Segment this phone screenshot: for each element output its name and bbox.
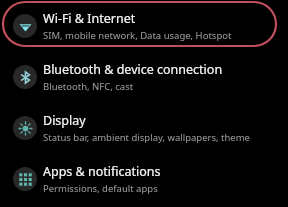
staticText: Permissions, default apps (43, 182, 158, 195)
staticText: Wi-Fi & Internet (43, 10, 136, 27)
button[interactable]: Wi-Fi & Internet (0, 0, 288, 51)
staticText: Bluetooth & device connection (43, 61, 223, 78)
staticText: SIM, mobile network, Data usage, Hotspot (43, 29, 232, 42)
staticText: Bluetooth, NFC, cast (43, 80, 134, 93)
button[interactable]: Display (0, 102, 288, 153)
staticText: Display (43, 112, 86, 129)
button[interactable]: Bluetooth & device connection (0, 51, 288, 102)
staticText: Apps & notifications (43, 163, 161, 180)
staticText: Status bar, ambient display, wallpapers,… (43, 131, 250, 144)
button[interactable]: Apps & notifications (0, 153, 288, 204)
